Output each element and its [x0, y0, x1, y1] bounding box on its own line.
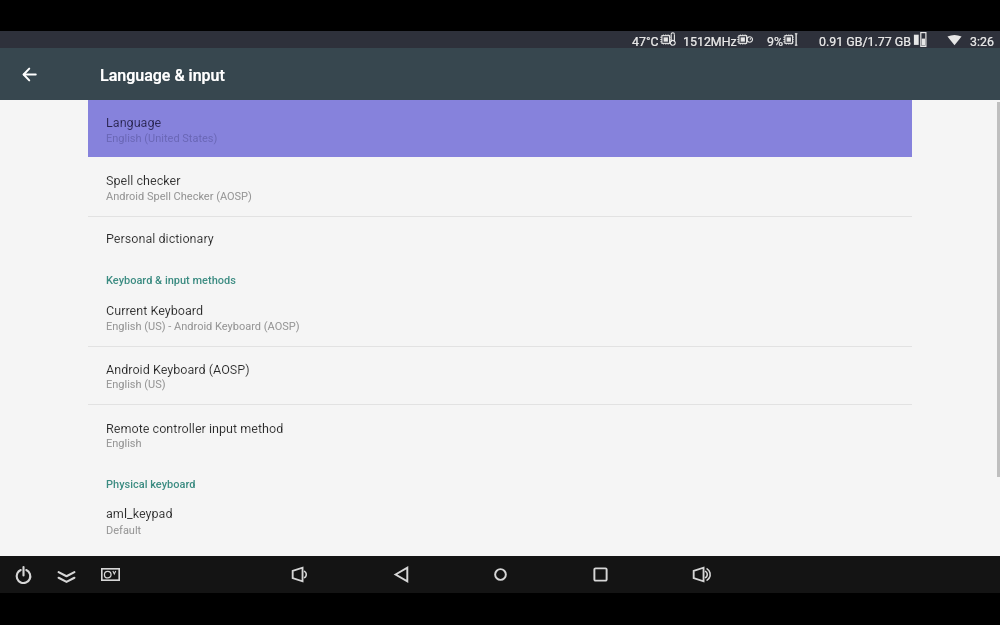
button[interactable] [88, 489, 912, 556]
button[interactable] [88, 405, 912, 463]
button[interactable] [88, 217, 912, 274]
staticText: Spell checker [106, 173, 181, 188]
button[interactable]: Volume up [682, 556, 720, 593]
staticText: 1512MHz [683, 34, 737, 49]
button[interactable] [88, 157, 912, 216]
staticText: English [106, 437, 142, 450]
staticText: Personal dictionary [106, 231, 214, 246]
staticText: 3:26 [970, 34, 994, 49]
staticText: Remote controller input method [106, 421, 284, 436]
staticText: Physical keyboard [106, 478, 196, 491]
staticText: English (US) - Android Keyboard (AOSP) [106, 320, 300, 333]
button[interactable]: Screenshot [91, 556, 129, 593]
button[interactable] [88, 100, 912, 157]
button[interactable]: Back [9, 48, 49, 100]
button[interactable] [88, 289, 912, 347]
staticText: Current Keyboard [106, 303, 204, 318]
button[interactable]: Power [4, 556, 42, 593]
staticText: 0.91 GB/1.77 GB [819, 34, 911, 49]
button[interactable]: Home [481, 556, 519, 593]
staticText: Android Spell Checker (AOSP) [106, 190, 252, 203]
staticText: Language & input [100, 66, 225, 85]
staticText: Android Keyboard (AOSP) [106, 362, 250, 377]
button[interactable] [88, 347, 912, 405]
staticText: English (US) [106, 378, 166, 391]
staticText: Default [106, 524, 142, 537]
staticText: English (United States) [106, 132, 218, 145]
staticText: 47°C [632, 34, 659, 49]
button[interactable]: Collapse notifications [47, 556, 85, 593]
staticText: aml_keypad [106, 506, 173, 521]
button[interactable]: Recents [581, 556, 619, 593]
button[interactable]: Volume down [281, 556, 319, 593]
button[interactable]: Back [381, 556, 419, 593]
staticText: Keyboard & input methods [106, 274, 236, 287]
staticText: Language [106, 115, 162, 130]
staticText: 9% [767, 34, 784, 49]
